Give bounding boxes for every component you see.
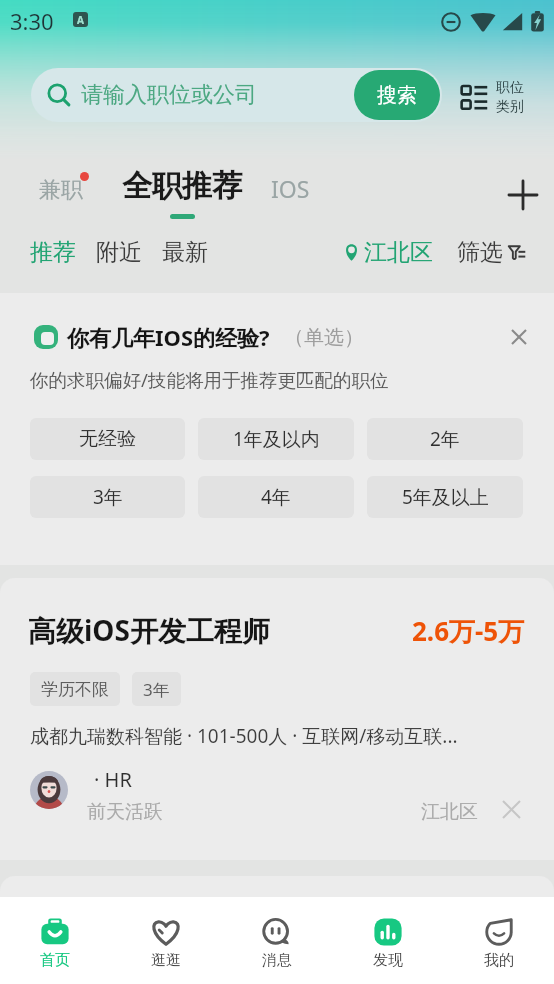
button[interactable]: 发现 xyxy=(332,897,443,984)
staticText: 江北区 xyxy=(421,800,478,824)
staticText: 3年 xyxy=(93,484,123,510)
staticText: （单选） xyxy=(284,325,364,350)
staticText: 你有几年IOS的经验? xyxy=(67,322,270,352)
staticText: 学历不限 xyxy=(41,679,109,700)
staticText: 首页 xyxy=(40,951,70,970)
staticText: 1年及以内 xyxy=(233,426,320,452)
button[interactable]: 2年 xyxy=(367,418,523,460)
button[interactable]: 江北区 xyxy=(345,238,433,267)
button[interactable]: 无经验 xyxy=(30,418,185,460)
button[interactable]: IOS xyxy=(271,173,310,204)
staticText: 发现 xyxy=(373,951,403,970)
staticText: 无经验 xyxy=(79,427,136,451)
staticText: 3年 xyxy=(143,678,170,701)
staticText: 类别 xyxy=(496,98,524,116)
staticText: 我的 xyxy=(484,951,514,970)
button[interactable]: 我的 xyxy=(443,897,554,984)
button[interactable]: 搜索 xyxy=(354,70,440,120)
button[interactable]: 筛选 xyxy=(457,238,526,267)
staticText: 2.6万-5万 xyxy=(412,613,525,649)
staticText: 4年 xyxy=(261,484,291,510)
staticText: 兼职 xyxy=(39,176,83,204)
staticText: 2年 xyxy=(430,426,460,452)
button[interactable]: 首页 xyxy=(0,897,110,984)
button[interactable]: 1年及以内 xyxy=(198,418,354,460)
staticText: 高级iOS开发工程师 xyxy=(28,611,270,649)
staticText: 前天活跃 xyxy=(87,800,163,824)
staticText: · HR xyxy=(94,766,132,793)
button[interactable]: 推荐 xyxy=(30,238,76,267)
staticText: 全职推荐 xyxy=(122,167,242,205)
staticText: 请输入职位或公司 xyxy=(81,81,257,109)
button[interactable]: 职位 xyxy=(461,79,524,116)
staticText: 逛逛 xyxy=(151,951,181,970)
staticText: 3:30 xyxy=(10,6,54,36)
button[interactable]: 兼职 xyxy=(39,176,83,204)
button[interactable]: 逛逛 xyxy=(110,897,221,984)
staticText: 成都九瑞数科智能 · 101-500人 · 互联网/移动互联... xyxy=(30,723,458,749)
staticText: 筛选 xyxy=(457,238,503,267)
staticText: 消息 xyxy=(262,951,292,970)
button[interactable]: 请输入职位或公司 xyxy=(31,68,442,122)
button[interactable]: 4年 xyxy=(198,476,354,518)
button[interactable]: 3年 xyxy=(30,476,185,518)
staticText: A xyxy=(77,13,84,27)
button[interactable]: Add xyxy=(505,177,541,213)
button[interactable]: Close xyxy=(506,324,532,350)
button[interactable]: 消息 xyxy=(221,897,332,984)
staticText: 职位 xyxy=(496,79,524,97)
button[interactable]: 最新 xyxy=(162,238,208,267)
staticText: 你的求职偏好/技能将用于推荐更匹配的职位 xyxy=(30,367,389,392)
button[interactable]: 全职推荐 xyxy=(122,167,242,219)
staticText: 江北区 xyxy=(364,238,433,267)
button[interactable]: 附近 xyxy=(96,238,142,267)
staticText: 5年及以上 xyxy=(402,484,489,510)
button[interactable]: Dismiss xyxy=(499,797,523,821)
button[interactable]: 5年及以上 xyxy=(367,476,523,518)
staticText: 搜索 xyxy=(377,83,417,108)
button[interactable]: 高级iOS开发工程师 xyxy=(0,578,554,860)
